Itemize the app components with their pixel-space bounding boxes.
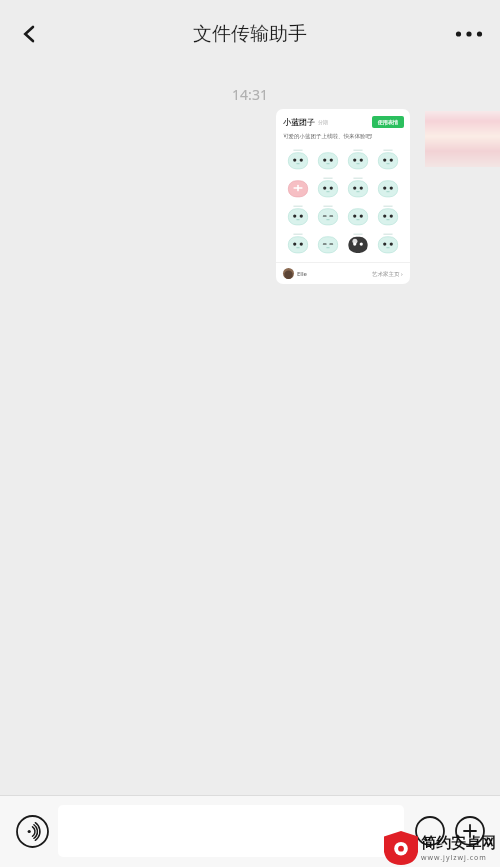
staticText: 分期 xyxy=(318,119,328,125)
staticText: www.jylzwj.com xyxy=(421,853,487,863)
button[interactable]: Voice input xyxy=(10,809,54,853)
button[interactable]: Emoji xyxy=(410,811,450,851)
button[interactable] xyxy=(58,805,404,857)
button[interactable]: More functions xyxy=(450,811,490,851)
staticText: 小蓝团子 xyxy=(283,117,315,127)
staticText: 简约安卓网 xyxy=(421,834,496,853)
button[interactable]: 小蓝团子 xyxy=(276,109,410,284)
staticText: 14:31 xyxy=(0,85,500,104)
staticText: 可爱的小蓝团子上线啦、快来体验吧! xyxy=(283,132,373,140)
staticText: 使用表情 xyxy=(378,119,398,125)
staticText: 艺术家主页 › xyxy=(372,270,403,278)
button[interactable]: More options xyxy=(438,0,500,67)
button[interactable]: Back xyxy=(0,0,58,67)
staticText: 文件传输助手 xyxy=(193,22,307,46)
staticText: Elle xyxy=(297,270,308,278)
button[interactable]: 使用表情 xyxy=(372,116,404,128)
